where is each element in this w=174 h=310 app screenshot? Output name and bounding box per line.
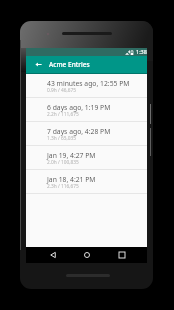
staticText: 2.2h / 111,675 <box>47 111 79 118</box>
staticText: 1.3h / 65,035 <box>47 135 77 142</box>
button[interactable]: 7 days ago, 4:28 PM <box>26 122 147 145</box>
staticText: 7 days ago, 4:28 PM <box>47 127 111 136</box>
staticText: 2.3h / 116,675 <box>47 183 79 190</box>
staticText: 1:38 <box>136 48 147 55</box>
staticText: Acme Entries <box>49 60 90 69</box>
button[interactable]: Back <box>30 56 47 73</box>
button[interactable]: Recent apps <box>113 247 130 263</box>
staticText: 0.9h / 46,675 <box>47 87 77 94</box>
button[interactable]: Home <box>78 247 95 263</box>
button[interactable]: Jan 19, 4:27 PM <box>26 146 147 169</box>
staticText: 43 minutes ago, 12:55 PM <box>47 79 130 88</box>
staticText: 6 days ago, 1:19 PM <box>47 103 111 112</box>
button[interactable]: Back <box>44 247 61 263</box>
staticText: Jan 19, 4:27 PM <box>47 151 96 160</box>
button[interactable]: 6 days ago, 1:19 PM <box>26 98 147 121</box>
staticText: Jan 18, 4:21 PM <box>47 175 96 184</box>
button[interactable]: Jan 18, 4:21 PM <box>26 170 147 193</box>
button[interactable]: 43 minutes ago, 12:55 PM <box>26 74 147 97</box>
staticText: 2.0h / 100,835 <box>47 159 79 166</box>
